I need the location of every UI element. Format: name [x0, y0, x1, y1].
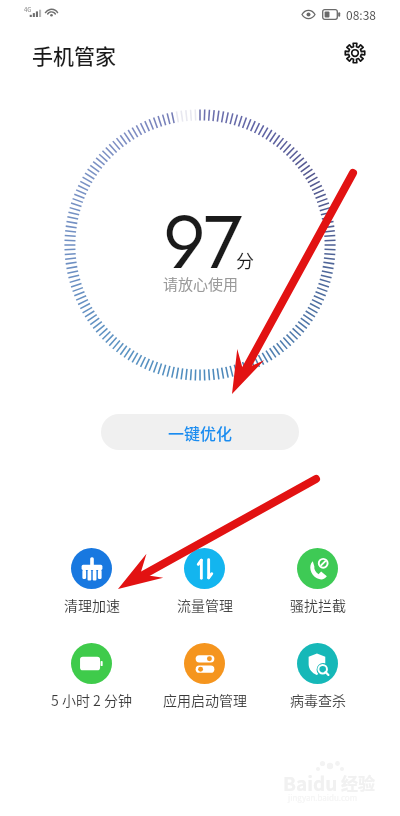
- staticText: 手机管家: [32, 40, 116, 70]
- staticText: 流量管理: [177, 595, 233, 615]
- button[interactable]: 5 小时 2 分钟: [35, 643, 148, 710]
- staticText: 97: [163, 189, 243, 296]
- staticText: 骚扰拦截: [290, 595, 346, 615]
- staticText: jingyan.baidu.com: [288, 792, 358, 804]
- staticText: 5 小时 2 分钟: [51, 690, 132, 710]
- staticText: 4G: [24, 5, 32, 14]
- staticText: 清理加速: [64, 595, 120, 615]
- button[interactable]: 一键优化: [101, 414, 299, 450]
- staticText: 分: [236, 247, 254, 273]
- staticText: 经验: [341, 770, 375, 795]
- staticText: 病毒查杀: [290, 690, 346, 710]
- button[interactable]: 应用启动管理: [148, 643, 261, 710]
- staticText: Baidu: [283, 769, 338, 797]
- staticText: 应用启动管理: [163, 690, 247, 710]
- button[interactable]: 流量管理: [148, 548, 261, 615]
- button[interactable]: 病毒查杀: [261, 643, 374, 710]
- staticText: 一键优化: [168, 421, 233, 444]
- staticText: 08:38: [346, 6, 376, 23]
- staticText: 请放心使用: [163, 273, 239, 295]
- button[interactable]: Settings: [338, 36, 372, 70]
- button[interactable]: 骚扰拦截: [261, 548, 374, 615]
- button[interactable]: 清理加速: [35, 548, 148, 615]
